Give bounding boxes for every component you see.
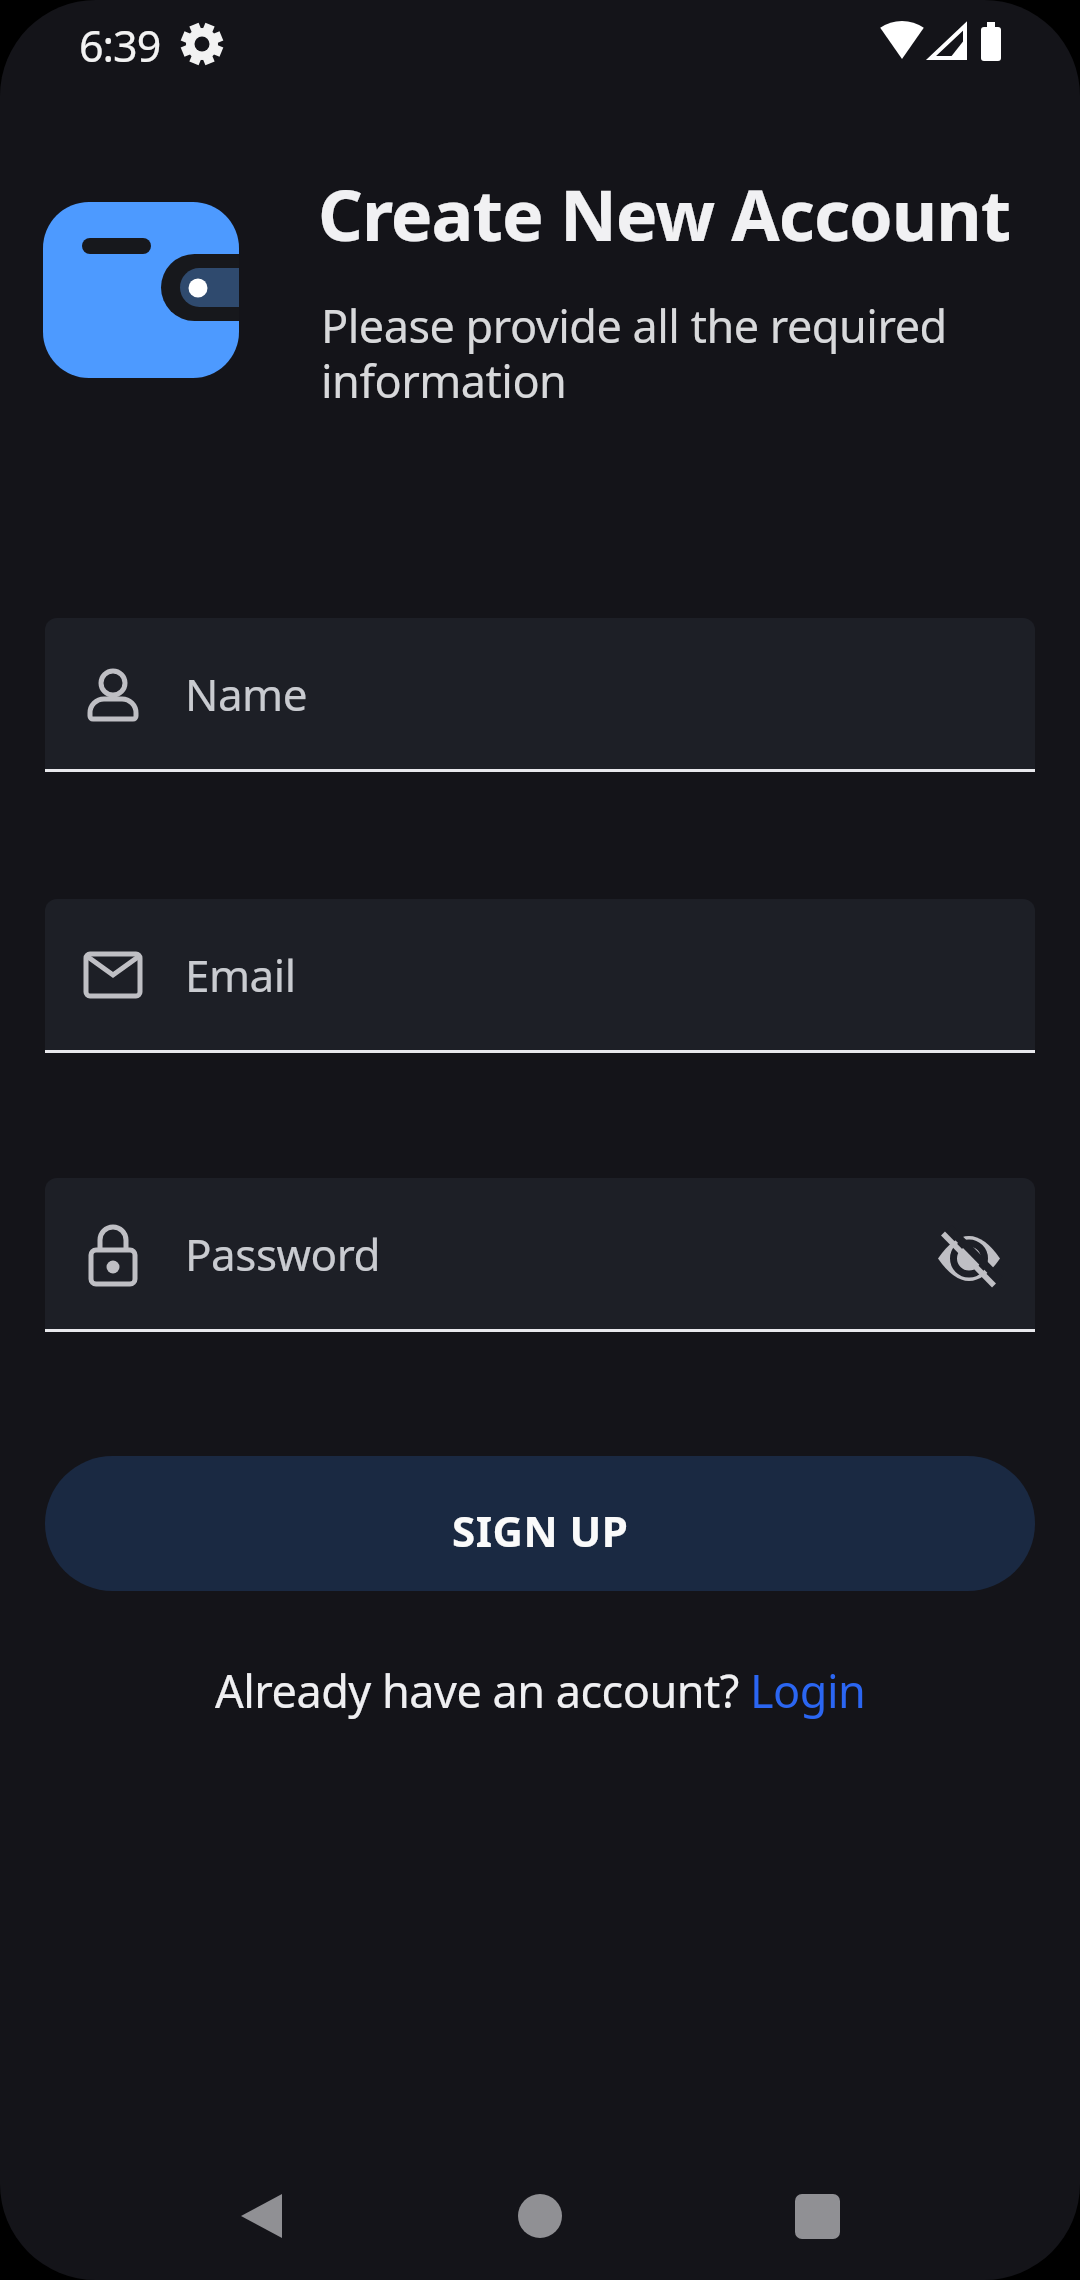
button[interactable] — [478, 2176, 602, 2264]
button[interactable]: Password — [45, 1178, 1035, 1332]
staticText: SIGN UP — [452, 1502, 629, 1559]
button[interactable] — [756, 2176, 880, 2264]
staticText: Please provide all the required informat… — [321, 295, 947, 411]
staticText: Password — [185, 1224, 381, 1284]
button[interactable]: Name — [45, 618, 1035, 772]
button[interactable]: SIGN UP — [45, 1456, 1035, 1591]
button[interactable] — [200, 2176, 324, 2264]
button[interactable]: Already have an account? Login — [215, 1660, 866, 1721]
staticText: Create New Account — [318, 166, 1011, 261]
staticText: 6:39 — [79, 16, 161, 75]
staticText: Name — [185, 664, 308, 724]
staticText: Email — [185, 945, 296, 1005]
button[interactable] — [43, 202, 239, 378]
button[interactable]: Email — [45, 899, 1035, 1053]
